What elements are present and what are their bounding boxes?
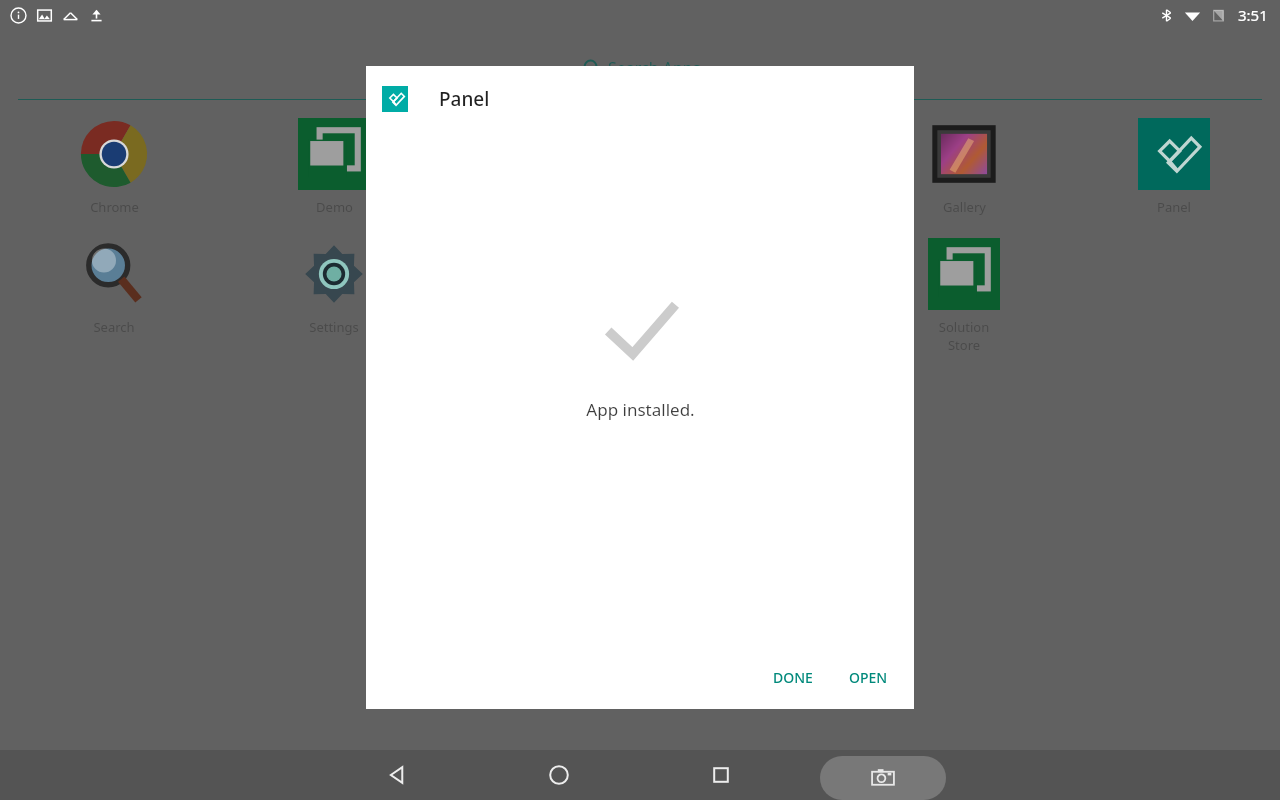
staticText: Search Apps <box>608 57 701 79</box>
staticText: Gallery <box>943 198 986 216</box>
button[interactable]: Screenshot <box>820 756 946 800</box>
staticText: Panel <box>1157 198 1191 216</box>
button[interactable]: Gallery <box>922 118 1006 216</box>
button[interactable]: Settings <box>292 238 376 336</box>
staticText: Settings <box>309 318 359 336</box>
button[interactable]: Demo <box>292 118 376 216</box>
button[interactable]: Recent apps <box>681 750 761 800</box>
staticText: 3:51 <box>1238 5 1268 25</box>
button[interactable]: Home <box>519 750 599 800</box>
staticText: Solution Store <box>922 318 1006 354</box>
staticText: Demo <box>316 198 353 216</box>
staticText: Search <box>93 318 135 336</box>
staticText: Panel <box>439 86 490 112</box>
button[interactable]: Search <box>72 238 156 336</box>
staticText: Chrome <box>90 198 139 216</box>
staticText: DONE <box>773 668 813 687</box>
button[interactable]: Chrome <box>72 118 156 216</box>
button[interactable]: Solution Store <box>922 238 1006 354</box>
button[interactable]: DONE <box>759 659 827 696</box>
button[interactable]: Search Apps <box>583 57 701 79</box>
staticText: App installed. <box>586 398 695 421</box>
button[interactable]: Back <box>357 750 437 800</box>
staticText: OPEN <box>849 668 888 687</box>
button[interactable]: Panel <box>1132 118 1216 216</box>
button[interactable]: OPEN <box>835 659 902 696</box>
